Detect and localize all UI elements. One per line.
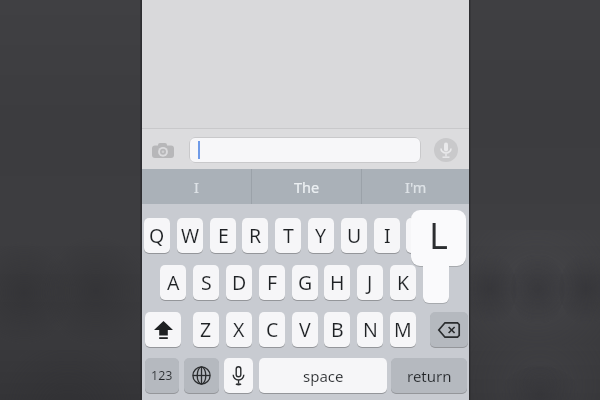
button[interactable] — [189, 137, 421, 163]
staticText: X — [233, 316, 245, 343]
button[interactable]: H — [324, 265, 350, 300]
button[interactable]: X — [226, 312, 252, 347]
button[interactable]: N — [357, 312, 383, 347]
button[interactable]: A — [160, 265, 186, 300]
button[interactable]: Q — [144, 218, 170, 253]
button[interactable] — [145, 312, 181, 347]
button[interactable]: M — [390, 312, 416, 347]
button[interactable] — [430, 312, 468, 347]
button[interactable]: K — [390, 265, 416, 300]
staticText: B — [331, 316, 344, 343]
button[interactable]: D — [226, 265, 252, 300]
staticText: A — [167, 269, 180, 296]
staticText: T — [283, 222, 294, 249]
button[interactable]: F — [259, 265, 285, 300]
staticText: F — [267, 269, 278, 296]
staticText: J — [367, 269, 373, 296]
staticText: The — [294, 177, 320, 197]
button[interactable]: The — [252, 169, 361, 204]
button[interactable]: L — [411, 210, 466, 266]
button[interactable]: C — [259, 312, 285, 347]
button[interactable]: U — [341, 218, 367, 253]
button[interactable]: R — [242, 218, 268, 253]
staticText: 123 — [151, 367, 173, 384]
button[interactable] — [224, 358, 253, 393]
staticText: P — [446, 222, 458, 249]
button[interactable]: W — [177, 218, 203, 253]
staticText: E — [218, 222, 229, 249]
button[interactable]: Z — [193, 312, 219, 347]
button[interactable]: G — [292, 265, 318, 300]
staticText: W — [181, 222, 200, 249]
button[interactable]: B — [324, 312, 350, 347]
staticText: G — [298, 269, 313, 296]
staticText: K — [397, 269, 410, 296]
button[interactable]: O — [406, 218, 432, 253]
staticText: R — [249, 222, 262, 249]
staticText: Z — [200, 316, 212, 343]
button[interactable] — [184, 358, 219, 393]
button[interactable]: V — [292, 312, 318, 347]
button[interactable]: I — [142, 169, 251, 204]
button[interactable]: T — [275, 218, 301, 253]
button[interactable]: E — [210, 218, 236, 253]
staticText: I — [194, 177, 199, 197]
button[interactable] — [152, 143, 174, 158]
staticText: M — [394, 316, 412, 343]
button[interactable]: J — [357, 265, 383, 300]
staticText: H — [330, 269, 345, 296]
button[interactable]: P — [439, 218, 465, 253]
button[interactable] — [434, 138, 458, 162]
staticText: V — [299, 316, 311, 343]
button[interactable]: I — [374, 218, 400, 253]
staticText: D — [232, 269, 247, 296]
button[interactable]: return — [391, 358, 467, 393]
staticText: space — [303, 366, 344, 386]
button[interactable]: S — [193, 265, 219, 300]
button[interactable]: 123 — [145, 358, 179, 393]
staticText: I — [384, 222, 391, 249]
button[interactable]: I'm — [362, 169, 469, 204]
staticText: L — [429, 211, 448, 260]
staticText: S — [201, 269, 212, 296]
staticText: Q — [149, 222, 165, 249]
staticText: I'm — [405, 177, 427, 197]
staticText: return — [407, 366, 452, 386]
button[interactable]: Y — [308, 218, 334, 253]
button[interactable]: space — [259, 358, 387, 393]
staticText: C — [266, 316, 279, 343]
staticText: Y — [315, 222, 327, 249]
staticText: U — [347, 222, 362, 249]
staticText: N — [363, 316, 378, 343]
